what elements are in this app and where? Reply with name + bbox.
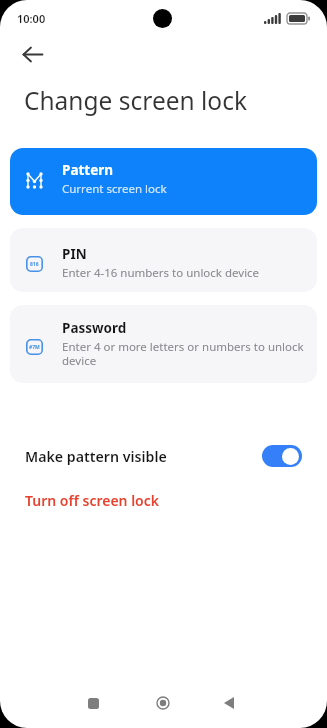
button[interactable] [70,688,116,718]
staticText: Make pattern visible [25,447,312,466]
staticText: Enter 4-16 numbers to unlock device [62,265,260,281]
button[interactable]: Make pattern visible [0,438,327,474]
staticText: Password [62,319,127,337]
staticText: PIN [62,245,87,263]
button[interactable] [206,688,252,718]
button[interactable] [13,38,53,72]
button[interactable]: Pattern [10,148,317,215]
button[interactable] [140,688,186,718]
staticText: Change screen lock [24,84,248,117]
staticText: Turn off screen lock [25,491,160,510]
button[interactable]: #7M [10,305,317,383]
staticText: 816 [30,261,39,268]
staticText: 10:00 [17,11,46,26]
button[interactable]: Turn off screen lock [0,486,250,514]
staticText: #7M [29,344,40,351]
staticText: Current screen lock [62,181,167,197]
button[interactable]: 816 [10,228,317,292]
staticText: Pattern [62,161,114,179]
staticText: Enter 4 or more letters or numbers to un… [62,339,304,369]
